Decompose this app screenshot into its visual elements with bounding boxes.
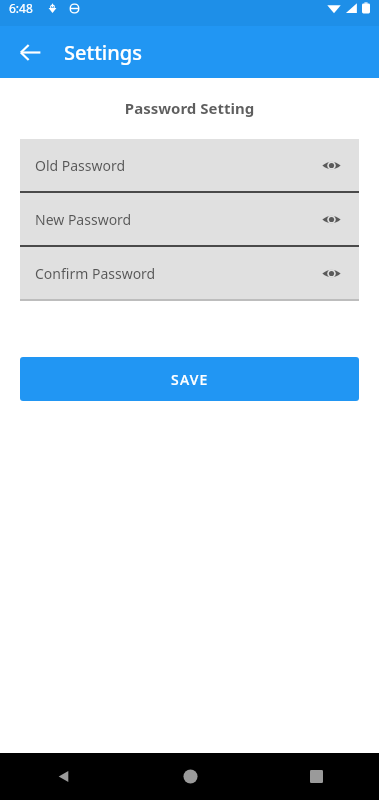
button[interactable]: Back xyxy=(8,30,52,74)
button[interactable]: Recent apps xyxy=(253,753,379,800)
staticText: Old Password xyxy=(35,156,126,175)
button[interactable]: Home xyxy=(127,753,253,800)
button[interactable]: Back xyxy=(0,753,127,800)
button[interactable]: New Password xyxy=(20,193,359,247)
staticText: Password Setting xyxy=(0,98,379,118)
staticText: Confirm Password xyxy=(35,264,156,283)
button[interactable]: Show password xyxy=(316,204,346,234)
button[interactable]: Old Password xyxy=(20,139,359,193)
button[interactable]: SAVE xyxy=(20,357,359,401)
staticText: SAVE xyxy=(171,370,209,389)
button[interactable]: Show password xyxy=(316,258,346,288)
staticText: New Password xyxy=(35,210,132,229)
staticText: Settings xyxy=(64,39,142,66)
button[interactable]: Confirm Password xyxy=(20,247,359,301)
staticText: 6:48 xyxy=(9,0,33,16)
button[interactable]: Show password xyxy=(316,150,346,180)
